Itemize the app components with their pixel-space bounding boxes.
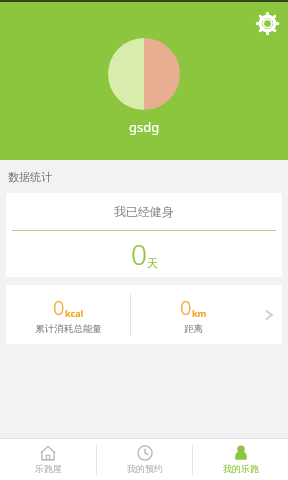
staticText: 累计消耗总能量 <box>35 323 102 335</box>
button[interactable]: 0 <box>6 285 282 344</box>
button[interactable]: Home <box>0 439 96 480</box>
staticText: 0 <box>180 294 192 321</box>
staticText: 乐跑屋 <box>35 463 62 474</box>
staticText: 天 <box>147 256 158 270</box>
staticText: 距离 <box>184 323 203 335</box>
button[interactable]: Settings <box>252 8 282 38</box>
staticText: 我的乐跑 <box>223 463 259 474</box>
staticText: 数据统计 <box>8 170 52 184</box>
staticText: kcal <box>65 307 84 319</box>
staticText: 0 <box>53 294 65 321</box>
button[interactable]: 我已经健身 <box>6 193 282 277</box>
staticText: 我已经健身 <box>114 204 174 219</box>
button[interactable]: My runs <box>193 439 288 480</box>
button[interactable]: Profile photo <box>108 38 180 110</box>
staticText: km <box>192 307 207 319</box>
button[interactable]: My bookings <box>97 439 192 480</box>
staticText: gsdg <box>129 118 160 136</box>
staticText: 我的预约 <box>127 463 163 474</box>
staticText: 0 <box>131 235 147 273</box>
